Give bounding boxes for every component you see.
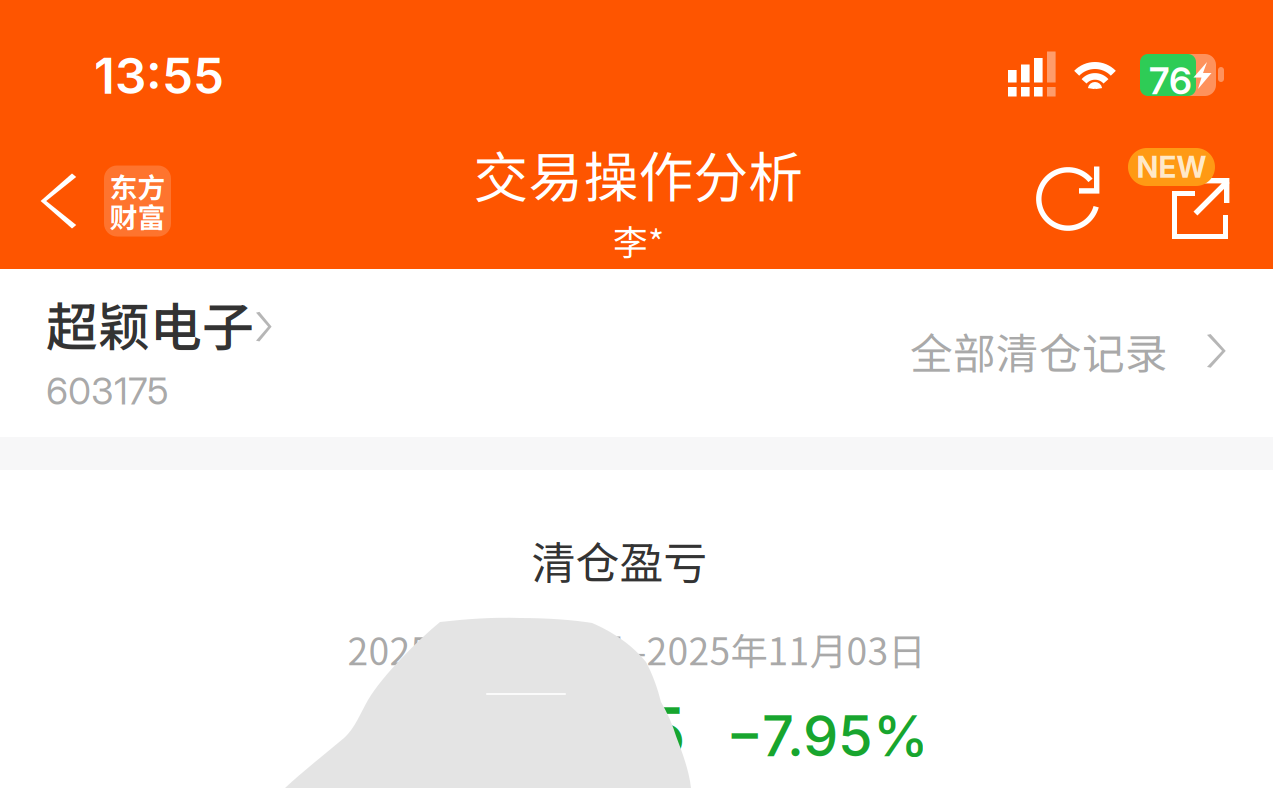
staticText: 超颖电子 — [46, 286, 254, 361]
button[interactable]: Refresh — [1023, 152, 1115, 246]
staticText: 李* — [613, 215, 664, 265]
staticText: −7.95% — [726, 702, 929, 770]
staticText: 东方 — [109, 166, 165, 206]
button[interactable]: 全部清仓记录 — [884, 302, 1254, 400]
button[interactable]: Share — [1092, 131, 1227, 237]
staticText: 13:55 — [94, 46, 224, 106]
button[interactable]: Back — [0, 146, 189, 256]
staticText: −1875 — [485, 690, 686, 774]
staticText: 财富 — [109, 196, 165, 236]
button[interactable]: 超颖电子 — [0, 276, 292, 423]
staticText: 清仓盈亏 — [531, 528, 707, 592]
staticText: 2025年09月15日–2025年11月03日 — [347, 622, 925, 676]
staticText: NEW — [1136, 149, 1206, 185]
staticText: 603175 — [46, 368, 169, 413]
staticText: 全部清仓记录 — [910, 320, 1168, 382]
staticText: 76 — [1149, 58, 1192, 103]
staticText: 交易操作分析 — [473, 134, 803, 213]
